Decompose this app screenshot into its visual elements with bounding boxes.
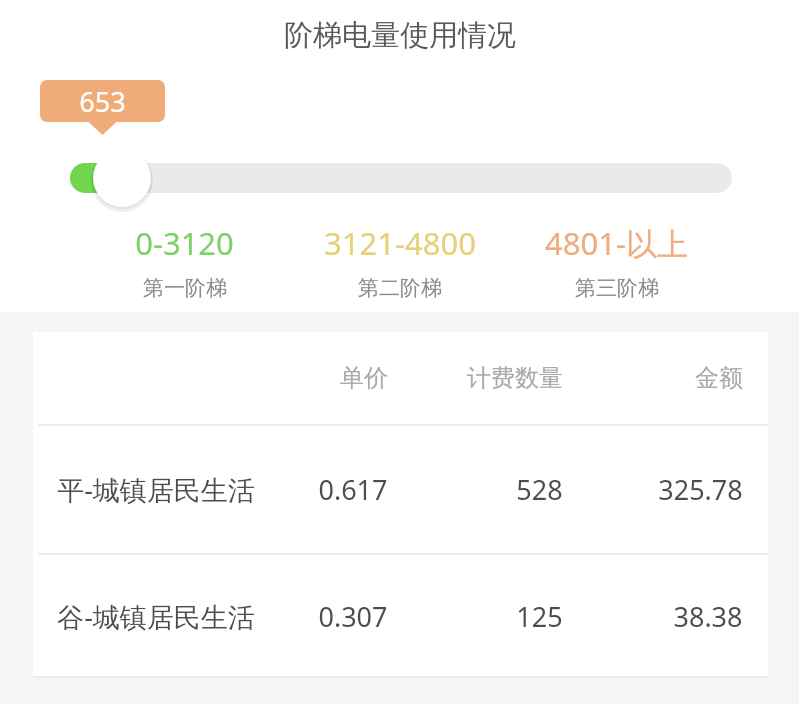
button[interactable]: 4801-以上 xyxy=(506,222,726,301)
staticText: 单价 xyxy=(340,363,388,393)
staticText: 第三阶梯 xyxy=(575,275,659,301)
staticText: 653 xyxy=(79,83,126,120)
staticText: 3121-4800 xyxy=(324,222,476,264)
button[interactable]: Electricity usage slider xyxy=(0,148,799,208)
button[interactable]: 0-3120 xyxy=(74,222,294,301)
staticText: 528 xyxy=(516,471,563,508)
staticText: 阶梯电量使用情况 xyxy=(284,17,516,54)
staticText: 0.307 xyxy=(318,598,388,635)
staticText: 0.617 xyxy=(318,471,388,508)
button[interactable]: Current usage 653 xyxy=(40,80,165,135)
staticText: 第二阶梯 xyxy=(358,275,442,301)
staticText: 325.78 xyxy=(658,471,743,508)
staticText: 125 xyxy=(516,598,563,635)
button[interactable]: 单价 xyxy=(33,332,768,424)
button[interactable]: 3121-4800 xyxy=(290,222,510,301)
button[interactable]: 谷-城镇居民生活 xyxy=(33,555,768,677)
staticText: 第一阶梯 xyxy=(143,275,227,301)
staticText: 38.38 xyxy=(673,598,743,635)
staticText: 计费数量 xyxy=(467,363,563,393)
staticText: 金额 xyxy=(695,363,743,393)
staticText: 平-城镇居民生活 xyxy=(57,471,255,508)
staticText: 4801-以上 xyxy=(545,222,688,264)
staticText: 0-3120 xyxy=(135,222,234,264)
staticText: 谷-城镇居民生活 xyxy=(57,598,255,635)
button[interactable]: 平-城镇居民生活 xyxy=(33,426,768,553)
